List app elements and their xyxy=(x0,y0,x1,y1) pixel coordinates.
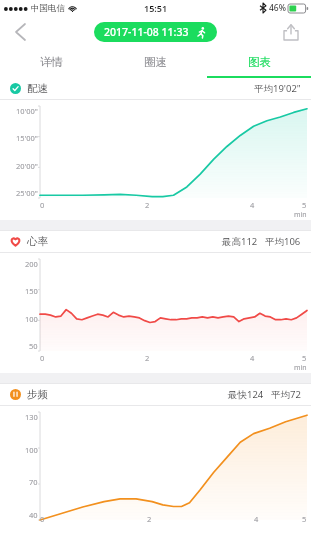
staticText: 20'00" xyxy=(16,161,38,171)
button[interactable]: 步频 xyxy=(0,384,311,405)
staticText: 2 xyxy=(147,514,152,524)
button[interactable]: 2017-11-08 11:33 xyxy=(94,22,217,42)
staticText: 50 xyxy=(29,341,38,351)
staticText: 平均19'02" xyxy=(254,82,301,95)
staticText: 平均72 xyxy=(271,388,301,401)
staticText: 130 xyxy=(25,412,38,422)
staticText: min xyxy=(294,210,307,220)
staticText: 4 xyxy=(250,200,255,210)
button[interactable]: 心率 xyxy=(0,231,311,252)
staticText: 0 xyxy=(40,514,45,524)
staticText: 100 xyxy=(25,445,38,455)
staticText: 150 xyxy=(25,286,38,296)
staticText: 平均106 xyxy=(265,235,301,248)
staticText: 4 xyxy=(254,514,259,524)
staticText: 25'00" xyxy=(16,188,38,198)
staticText: 步频 xyxy=(27,388,48,401)
staticText: 0 xyxy=(40,353,45,363)
staticText: 配速 xyxy=(27,82,48,95)
button[interactable]: 圈速 xyxy=(103,48,207,76)
staticText: 15:51 xyxy=(144,2,168,14)
staticText: 200 xyxy=(25,259,38,269)
staticText: 心率 xyxy=(27,235,48,248)
staticText: 5 xyxy=(302,200,307,210)
staticText: 100 xyxy=(25,314,38,324)
staticText: 40 xyxy=(29,510,38,520)
staticText: 15'00" xyxy=(16,133,38,143)
staticText: 2 xyxy=(145,353,150,363)
staticText: 圈速 xyxy=(144,55,167,69)
staticText: 70 xyxy=(29,477,38,487)
staticText: 46% xyxy=(269,2,286,14)
staticText: 0 xyxy=(40,200,45,210)
staticText: 图表 xyxy=(248,55,271,69)
staticText: 2 xyxy=(145,200,150,210)
staticText: 10'00" xyxy=(16,106,38,116)
staticText: 中国电信 xyxy=(31,3,65,14)
staticText: 4 xyxy=(250,353,255,363)
button[interactable]: 配速 xyxy=(0,78,311,99)
button[interactable]: Back xyxy=(0,16,40,48)
staticText: 5 xyxy=(302,514,307,524)
button[interactable]: Share xyxy=(271,16,311,48)
staticText: 5 xyxy=(302,353,307,363)
button[interactable]: 详情 xyxy=(0,48,103,76)
staticText: 最高112 xyxy=(222,235,258,248)
button[interactable]: 图表 xyxy=(207,48,311,76)
staticText: 最快124 xyxy=(228,388,264,401)
staticText: 2017-11-08 11:33 xyxy=(104,25,189,39)
staticText: 详情 xyxy=(40,55,63,69)
staticText: min xyxy=(294,363,307,373)
